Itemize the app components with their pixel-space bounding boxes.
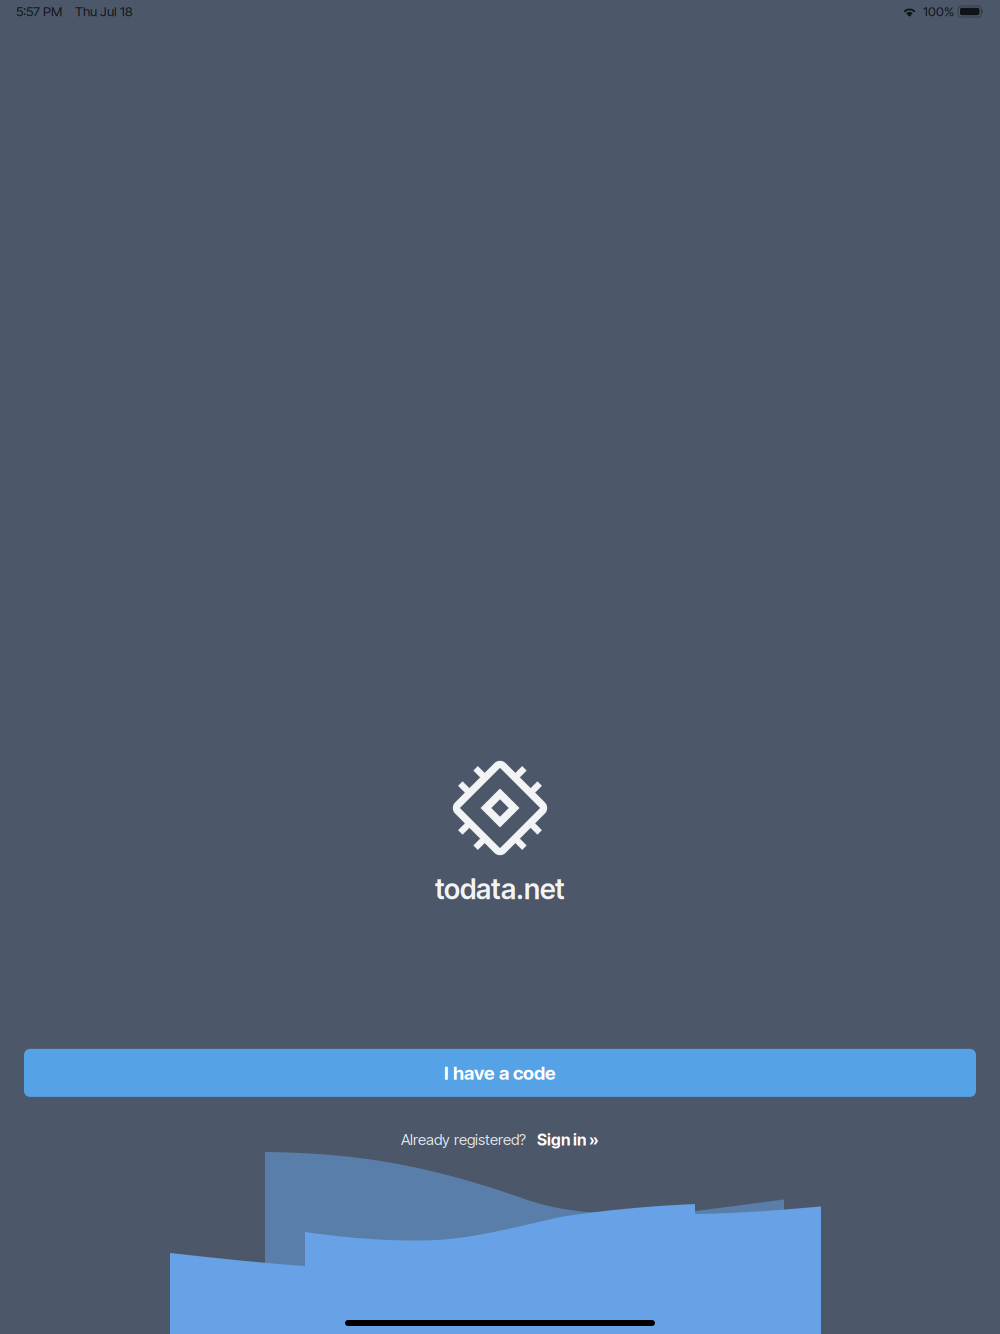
staticText: Thu Jul 18 (75, 3, 133, 19)
staticText: todata.net (435, 872, 565, 906)
button[interactable]: I have a code (24, 1049, 976, 1097)
staticText: Already registered? (401, 1130, 526, 1149)
staticText: 5:57 PM (16, 3, 62, 19)
staticText: Sign in » (537, 1130, 599, 1149)
staticText: I have a code (444, 1062, 556, 1084)
button[interactable]: Sign in » (537, 1130, 599, 1149)
staticText: 100% (923, 3, 954, 19)
